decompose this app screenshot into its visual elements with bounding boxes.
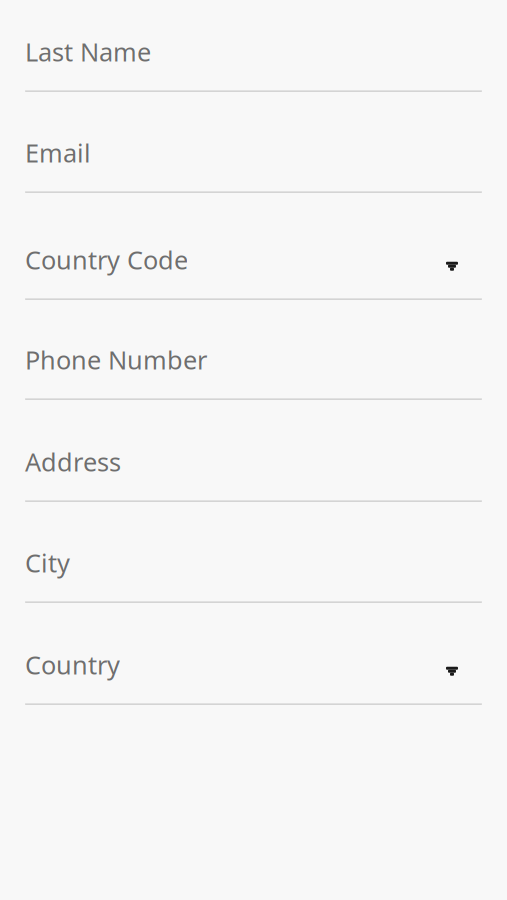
button[interactable]: Country Code	[25, 229, 482, 296]
staticText: Country Code	[25, 243, 188, 276]
button[interactable]: Address	[25, 431, 482, 498]
staticText: City	[25, 546, 70, 579]
staticText: Phone Number	[25, 343, 207, 376]
button[interactable]: Phone Number	[25, 329, 482, 396]
button[interactable]: Last Name	[25, 21, 482, 88]
staticText: Last Name	[25, 35, 151, 68]
staticText: Email	[25, 136, 91, 169]
staticText: Address	[25, 445, 121, 478]
button[interactable]: Email	[25, 122, 482, 189]
button[interactable]: City	[25, 532, 482, 599]
button[interactable]: Country	[25, 634, 482, 701]
staticText: Country	[25, 648, 120, 681]
